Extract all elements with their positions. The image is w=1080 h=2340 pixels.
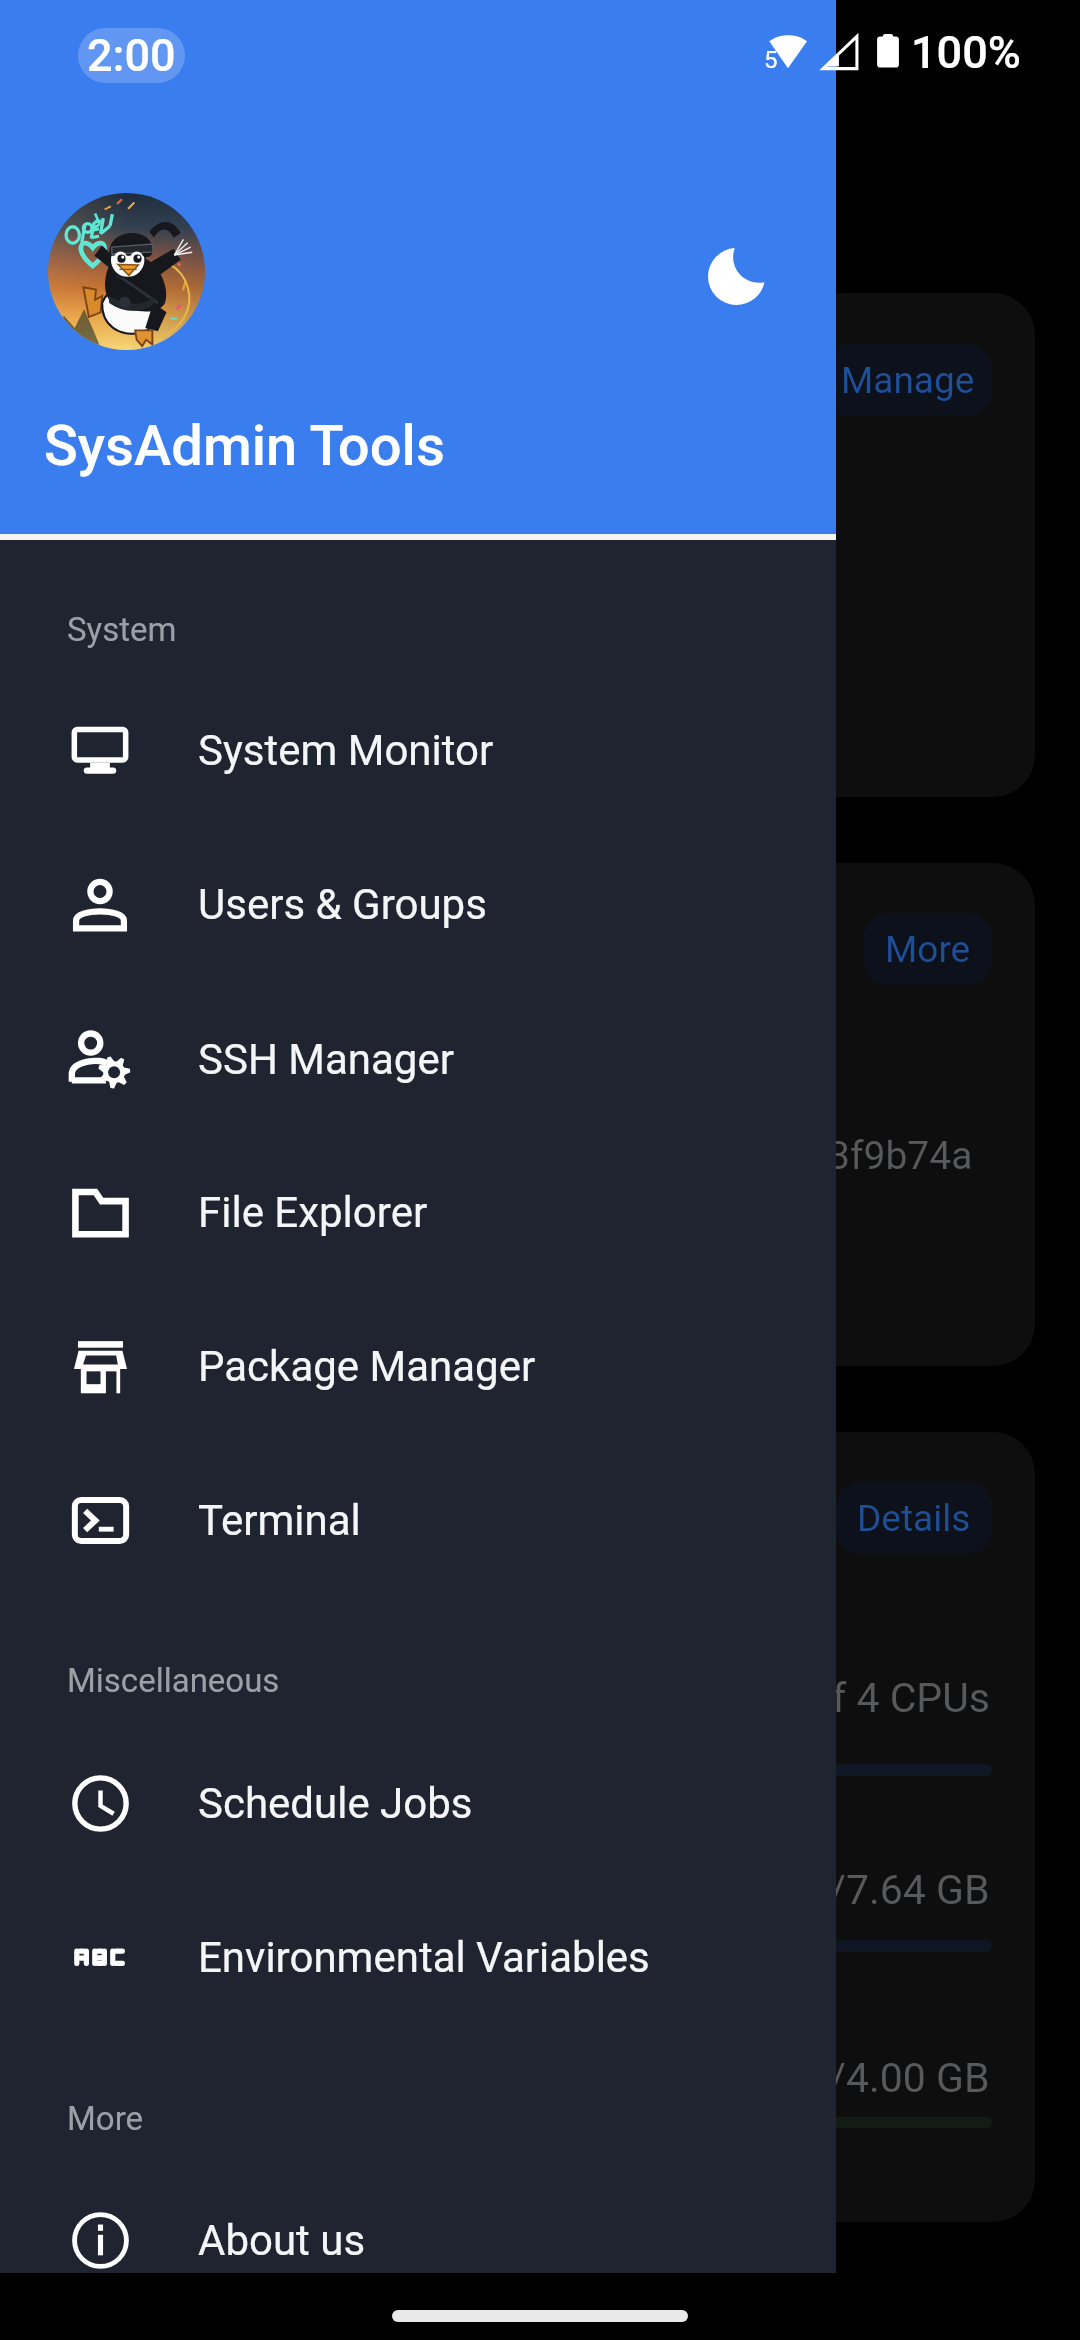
staticText: Miscellaneous (67, 1661, 280, 1700)
staticText: More (67, 2099, 144, 2138)
staticText: Manage (841, 359, 975, 402)
button[interactable]: SSH Manager (0, 982, 836, 1136)
staticText: File Explorer (198, 1188, 428, 1237)
staticText: System Monitor (198, 726, 494, 775)
staticText: System (67, 610, 177, 649)
staticText: 3f9b74a (828, 1133, 973, 1179)
staticText: Schedule Jobs (198, 1779, 473, 1828)
button[interactable]: Manage (824, 344, 992, 416)
staticText: Users & Groups (198, 880, 487, 929)
button[interactable]: Terminal (0, 1443, 836, 1597)
button[interactable]: Environmental Variables (0, 1880, 836, 2034)
staticText: 2:00 (87, 29, 176, 82)
staticText: About us (198, 2216, 366, 2265)
staticText: 5 (764, 46, 778, 74)
staticText: More (885, 928, 971, 971)
button[interactable]: Package Manager (0, 1289, 836, 1443)
staticText: /4.00 GB (829, 2054, 990, 2102)
staticText: f 4 CPUs (832, 1674, 990, 1722)
staticText: SSH Manager (198, 1035, 454, 1084)
staticText: Details (857, 1497, 971, 1540)
button[interactable]: Users & Groups (0, 827, 836, 981)
button[interactable]: Toggle dark theme (688, 228, 784, 324)
button[interactable]: System Monitor (0, 673, 836, 827)
button[interactable]: File Explorer (0, 1135, 836, 1289)
staticText: 100% (911, 26, 1021, 79)
staticText: Package Manager (198, 1342, 536, 1391)
button[interactable]: Schedule Jobs (0, 1726, 836, 1880)
staticText: Environmental Variables (198, 1933, 650, 1982)
staticText: /7.64 GB (829, 1866, 990, 1914)
staticText: Terminal (198, 1496, 361, 1545)
button[interactable]: More (864, 913, 992, 985)
staticText: SysAdmin Tools (44, 413, 445, 479)
button[interactable]: About us (0, 2163, 836, 2317)
button[interactable]: Details (836, 1482, 992, 1554)
